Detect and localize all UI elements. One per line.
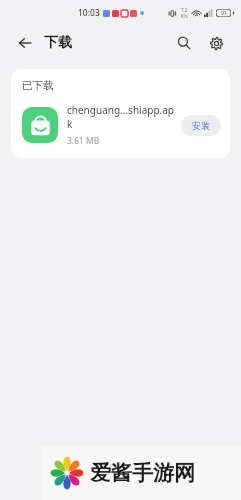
staticText: 爱酱手游网 (90, 460, 195, 486)
staticText: 10:03 (78, 7, 100, 19)
button[interactable]: chenguang...shiapp.apk (22, 103, 221, 147)
staticText: 7.2 (181, 7, 188, 13)
staticText: 安装 (192, 120, 210, 131)
button[interactable]: Settings (203, 30, 229, 56)
staticText: chenguang...shiapp.apk (67, 103, 175, 131)
staticText: 下载 (44, 34, 72, 52)
button[interactable]: Search (171, 30, 197, 56)
staticText: 已下载 (22, 79, 54, 92)
staticText: 91 (221, 10, 227, 17)
button[interactable]: 安装 (181, 115, 221, 136)
button[interactable]: Back (12, 30, 38, 56)
staticText: K/s (181, 13, 188, 19)
staticText: 3.61 MB (67, 135, 100, 147)
